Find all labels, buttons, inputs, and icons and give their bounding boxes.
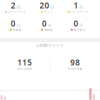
staticText: 0 bbox=[11, 18, 16, 29]
staticText: 回 bbox=[17, 5, 21, 10]
button[interactable]: 20 bbox=[31, 2, 63, 13]
button[interactable]: 0 bbox=[0, 20, 31, 31]
staticText: 20 bbox=[40, 0, 50, 11]
staticText: 有酸素 bbox=[13, 28, 22, 31]
staticText: 平均心拍数 bbox=[68, 67, 83, 70]
staticText: 最大心拍数 bbox=[17, 67, 32, 70]
staticText: 115 bbox=[17, 57, 32, 68]
staticText: ライト bbox=[44, 10, 53, 13]
staticText: ペースアップ bbox=[71, 10, 89, 13]
staticText: 1 bbox=[73, 0, 78, 11]
button[interactable]: 0 bbox=[31, 20, 63, 31]
staticText: 心拍数チャート bbox=[36, 43, 64, 48]
staticText: ワークアウト bbox=[8, 10, 26, 13]
button[interactable]: 0 bbox=[63, 20, 94, 31]
staticText: 無酸素 bbox=[44, 28, 53, 31]
staticText: 分 bbox=[79, 23, 83, 28]
staticText: 98 bbox=[70, 57, 80, 68]
staticText: 2 bbox=[11, 0, 16, 11]
button[interactable]: 2 bbox=[0, 2, 31, 13]
button[interactable]: 1 bbox=[63, 2, 94, 13]
staticText: 0 bbox=[42, 18, 47, 29]
staticText: 0 bbox=[73, 18, 78, 29]
staticText: 分 bbox=[48, 23, 52, 28]
staticText: 分 bbox=[50, 5, 54, 10]
staticText: 分 bbox=[79, 5, 83, 10]
staticText: 最大努力 bbox=[74, 28, 86, 31]
staticText: 分 bbox=[17, 23, 21, 28]
